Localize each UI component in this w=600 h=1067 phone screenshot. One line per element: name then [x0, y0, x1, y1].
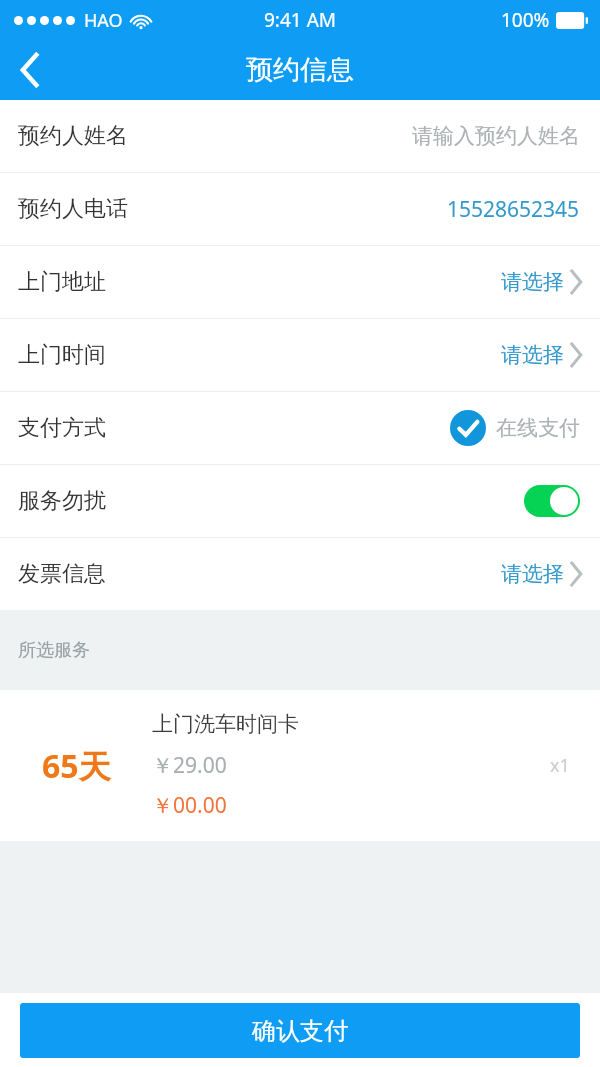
staticText: 所选服务: [18, 639, 90, 662]
button[interactable]: 支付方式: [0, 392, 600, 464]
staticText: 65天: [42, 744, 111, 788]
staticText: HAO: [84, 8, 123, 33]
staticText: 上门洗车时间卡: [152, 711, 299, 737]
staticText: 上门时间: [18, 341, 106, 369]
staticText: 15528652345: [447, 195, 580, 224]
staticText: x1: [550, 753, 570, 778]
button[interactable]: 确认支付: [20, 1003, 580, 1058]
staticText: 9:41 AM: [264, 7, 337, 33]
button[interactable]: Back: [0, 40, 60, 100]
button[interactable]: 65天: [0, 690, 600, 841]
staticText: 预约人电话: [18, 195, 128, 223]
staticText: 请输入预约人姓名: [412, 123, 580, 149]
staticText: 100%: [501, 7, 550, 33]
staticText: ￥29.00: [152, 751, 227, 780]
button[interactable]: 服务勿扰: [524, 485, 580, 517]
staticText: 服务勿扰: [18, 487, 106, 515]
staticText: ￥00.00: [152, 791, 227, 820]
button[interactable]: 发票信息: [0, 538, 600, 610]
button[interactable]: 上门地址: [0, 246, 600, 318]
staticText: 发票信息: [18, 560, 106, 588]
staticText: 请选择: [501, 561, 564, 587]
button[interactable]: 预约人电话: [0, 173, 600, 245]
staticText: 请选择: [501, 342, 564, 368]
staticText: 预约人姓名: [18, 122, 128, 150]
staticText: 请选择: [501, 269, 564, 295]
staticText: 在线支付: [496, 415, 580, 441]
staticText: 确认支付: [252, 1016, 348, 1046]
button[interactable]: 服务勿扰: [0, 465, 600, 537]
staticText: 支付方式: [18, 414, 106, 442]
button[interactable]: 上门时间: [0, 319, 600, 391]
staticText: 上门地址: [18, 268, 106, 296]
button[interactable]: 预约人姓名: [0, 100, 600, 172]
staticText: 预约信息: [246, 53, 354, 87]
